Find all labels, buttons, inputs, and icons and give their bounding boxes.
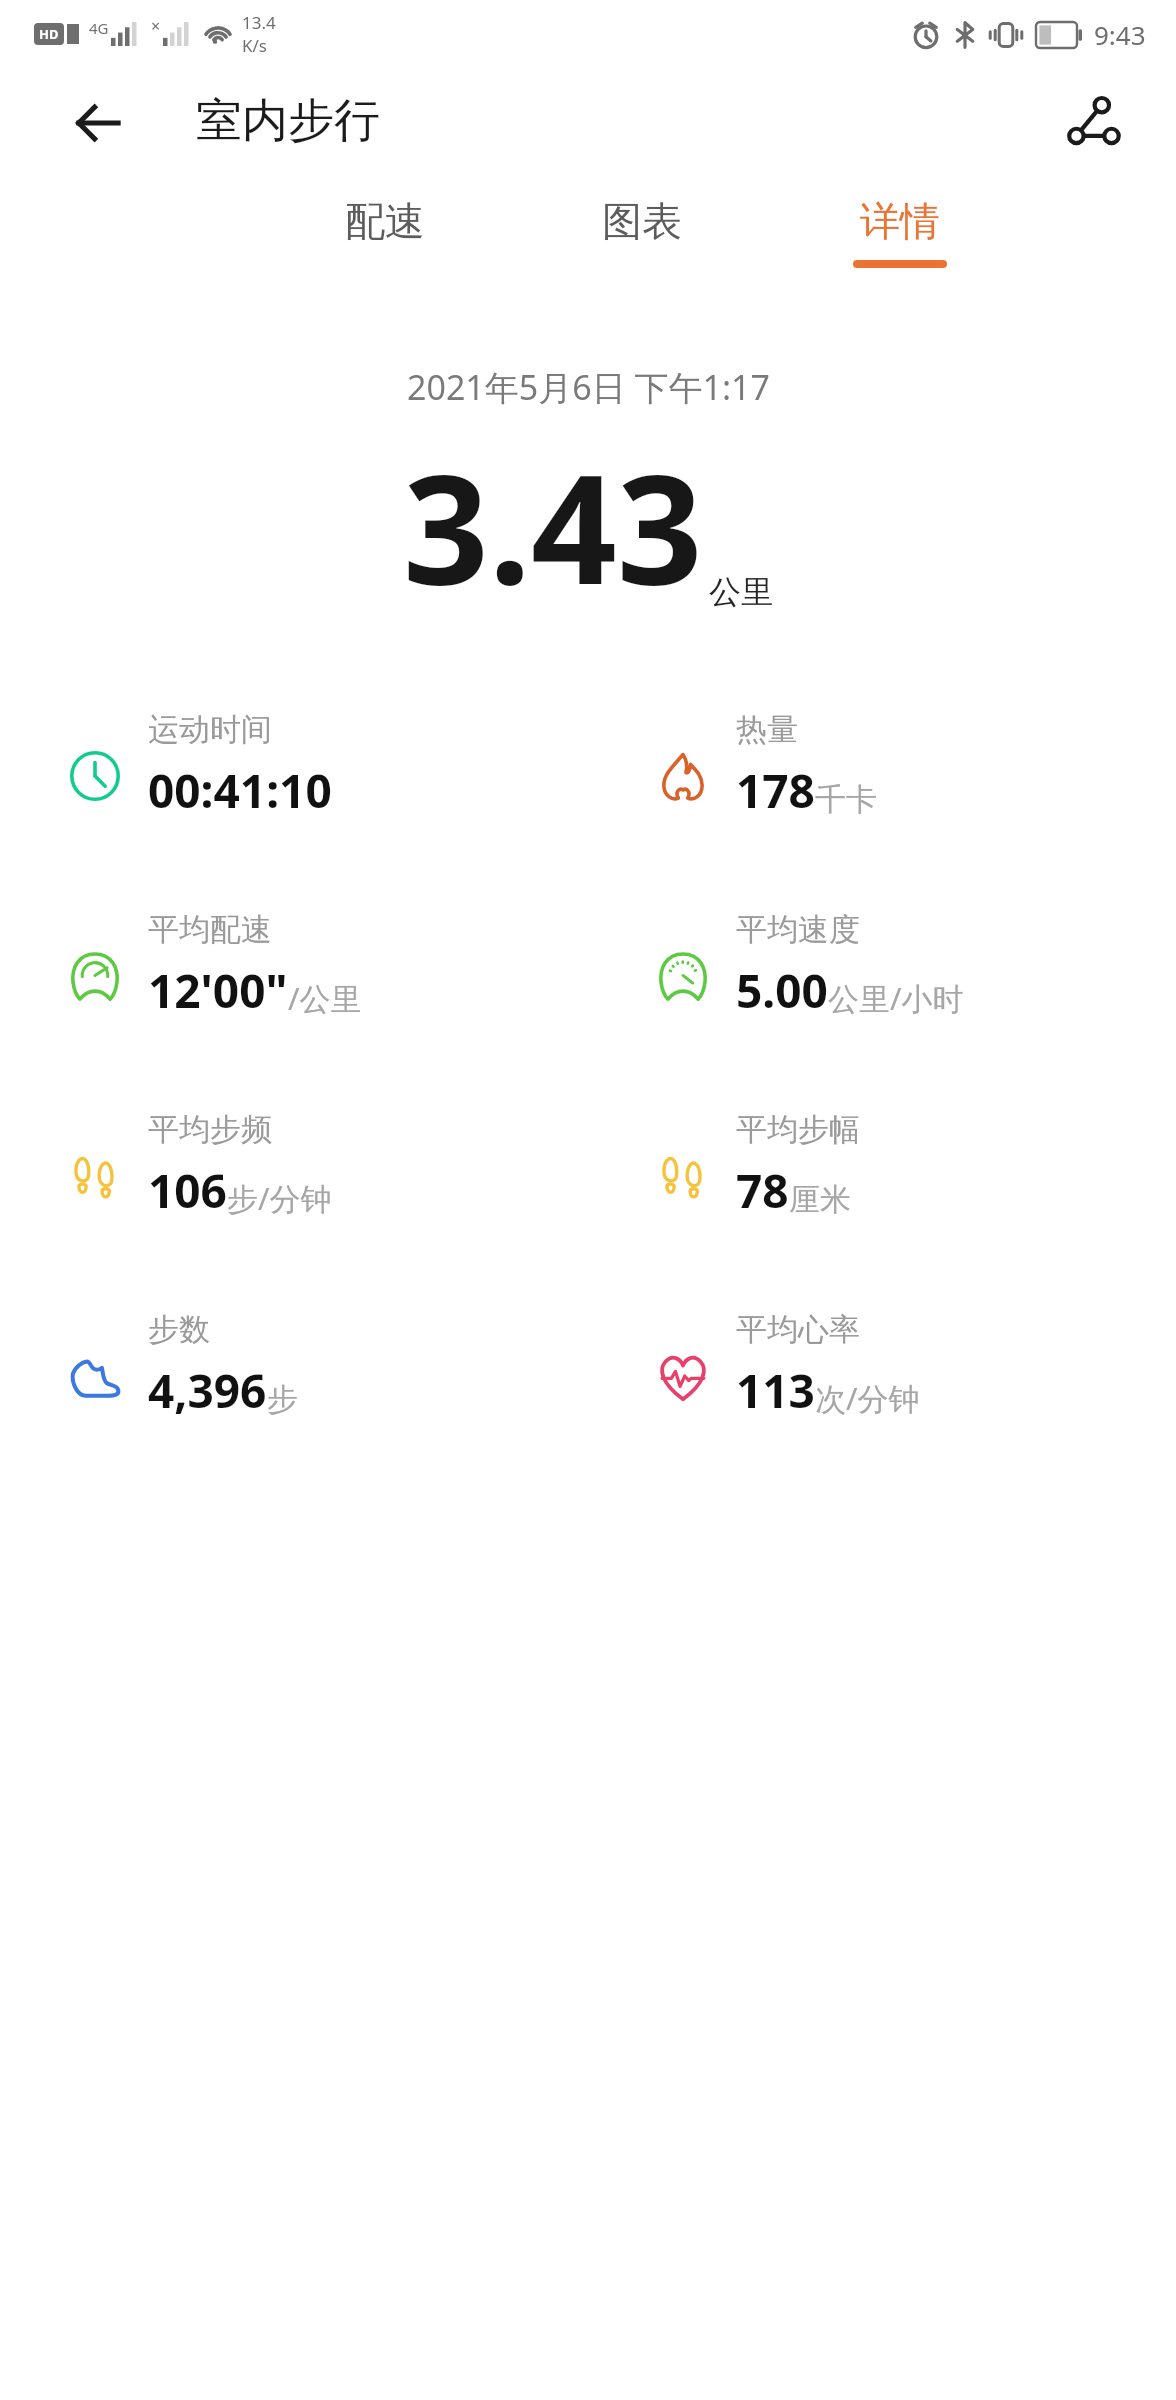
staticText: 12'00" (148, 959, 288, 1022)
staticText: 78 (736, 1159, 789, 1222)
staticText: 热量 (736, 710, 798, 749)
staticText: 4,396 (148, 1359, 267, 1422)
button[interactable]: Back (62, 87, 134, 159)
staticText: 113 (736, 1359, 815, 1422)
staticText: 平均速度 (736, 910, 860, 949)
button[interactable]: 热量 (588, 694, 1176, 838)
staticText: 步 (267, 1380, 298, 1419)
button[interactable]: 平均速度 (588, 894, 1176, 1038)
staticText: 详情 (860, 196, 940, 246)
button[interactable]: 平均步幅 (588, 1094, 1176, 1238)
button[interactable]: Share (1052, 84, 1130, 162)
staticText: HD (39, 25, 59, 43)
button[interactable]: 平均步频 (0, 1094, 588, 1238)
staticText: 千卡 (815, 780, 877, 819)
other: Bluetooth (954, 21, 976, 49)
staticText: 室内步行 (196, 92, 380, 150)
staticText: 次/分钟 (815, 1377, 920, 1419)
other: Vibrate (989, 21, 1023, 49)
staticText: 步数 (148, 1310, 210, 1349)
staticText: 公里 (709, 572, 773, 612)
button[interactable]: 图表 (547, 196, 737, 292)
button[interactable]: 详情 (805, 196, 995, 292)
staticText: 178 (736, 759, 815, 822)
staticText: /公里 (288, 977, 362, 1019)
staticText: × (151, 15, 161, 37)
staticText: 00:41:10 (148, 759, 332, 822)
staticText: 公里/小时 (828, 977, 964, 1019)
staticText: 9:43 (1094, 17, 1146, 52)
button[interactable]: 步数 (0, 1294, 588, 1438)
staticText: 平均步幅 (736, 1110, 860, 1149)
staticText: 13.4 (242, 11, 276, 34)
staticText: 3.43 (403, 424, 703, 628)
staticText: 厘米 (789, 1180, 851, 1219)
staticText: 步/分钟 (227, 1177, 332, 1219)
staticText: 图表 (602, 196, 682, 246)
staticText: K/s (242, 34, 267, 57)
staticText: 配速 (345, 196, 425, 246)
button[interactable]: 运动时间 (0, 694, 588, 838)
staticText: 2021年5月6日 下午1:17 (407, 364, 770, 410)
staticText: 平均配速 (148, 910, 272, 949)
button[interactable]: 配速 (290, 196, 480, 292)
staticText: 平均步频 (148, 1110, 272, 1149)
staticText: 运动时间 (148, 710, 272, 749)
staticText: 106 (148, 1159, 227, 1222)
button[interactable]: 平均心率 (588, 1294, 1176, 1438)
staticText: 平均心率 (736, 1310, 860, 1349)
button[interactable]: 平均配速 (0, 894, 588, 1038)
other: Alarm (911, 20, 941, 50)
staticText: 4G (89, 18, 109, 38)
staticText: 5.00 (736, 959, 828, 1022)
